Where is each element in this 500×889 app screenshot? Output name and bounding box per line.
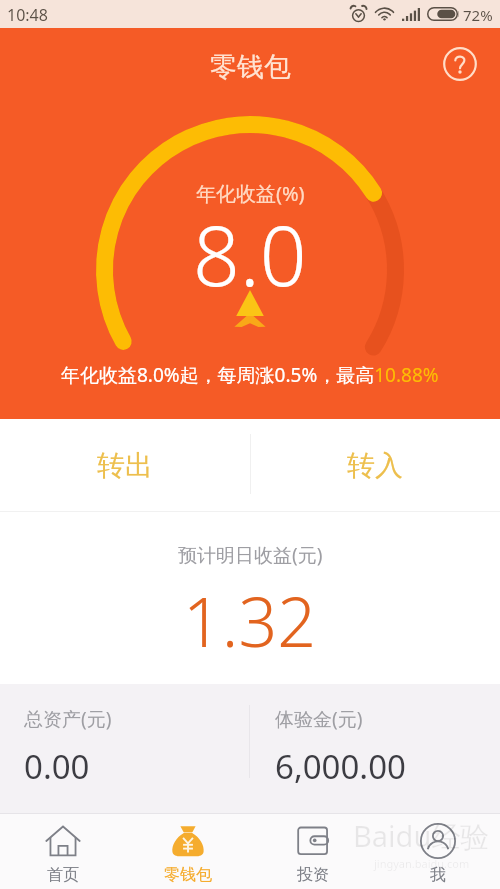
staticText: 10:48	[7, 4, 48, 26]
button[interactable]: 零钱包	[125, 814, 250, 889]
staticText: jingyan.baidu.com	[374, 856, 470, 871]
staticText: 投资	[297, 865, 329, 885]
staticText: 我	[430, 865, 446, 885]
button[interactable]: 我	[375, 814, 500, 889]
staticText: 首页	[47, 865, 79, 885]
staticText: 8.0	[193, 198, 307, 310]
staticText: Baidu经验	[353, 816, 490, 856]
staticText: 72%	[463, 5, 493, 25]
staticText: 1.32	[183, 574, 317, 667]
staticText: 6,000.00	[275, 744, 406, 789]
staticText: 转出	[97, 448, 153, 483]
staticText: 零钱包	[210, 50, 291, 84]
staticText: 0.00	[24, 744, 90, 789]
staticText: 年化收益8.0%起，每周涨0.5%，最高10.88%	[61, 362, 439, 388]
staticText: 预计明日收益(元)	[178, 542, 323, 568]
staticText: 体验金(元)	[275, 706, 363, 732]
button[interactable]: 首页	[0, 814, 125, 889]
button[interactable]: 投资	[250, 814, 375, 889]
staticText: 零钱包	[164, 865, 212, 885]
staticText: 年化收益(%)	[196, 180, 305, 207]
staticText: 转入	[347, 448, 403, 483]
button[interactable]: 转出	[0, 419, 250, 511]
staticText: 总资产(元)	[24, 706, 112, 732]
button[interactable]: 转入	[250, 419, 500, 511]
button[interactable]: Help	[441, 45, 479, 83]
